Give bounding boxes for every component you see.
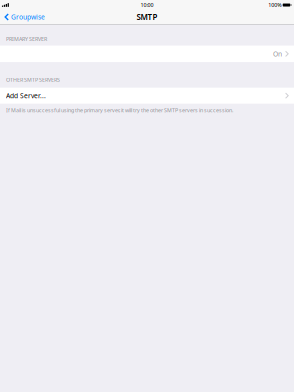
button[interactable]: Groupwise xyxy=(0,10,49,24)
button[interactable]: Add Server... xyxy=(0,88,294,104)
staticText: If Mail is unsuccessful using the primar… xyxy=(6,107,233,114)
staticText: Groupwise xyxy=(11,13,45,21)
staticText: OTHER SMTP SERVERS xyxy=(6,76,60,83)
staticText: On xyxy=(273,49,282,58)
staticText: SMTP xyxy=(136,12,157,22)
staticText: 10:00 xyxy=(140,1,153,9)
staticText: PRIMARY SERVER xyxy=(6,35,47,43)
staticText: Add Server... xyxy=(6,91,46,100)
staticText: 100% xyxy=(268,1,281,9)
button[interactable]: On xyxy=(0,46,294,62)
